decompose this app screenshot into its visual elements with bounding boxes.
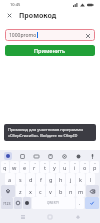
button[interactable]: j <box>66 173 75 185</box>
staticText: j <box>70 176 72 183</box>
staticText: 1 <box>4 161 6 164</box>
staticText: Промокод для участников программы <box>8 127 84 132</box>
button[interactable]: Enter <box>85 197 99 209</box>
button[interactable]: Clear <box>84 32 91 39</box>
staticText: m <box>78 188 84 195</box>
staticText: t <box>44 164 46 171</box>
button[interactable]: 7 <box>60 161 69 173</box>
staticText: e <box>23 164 27 171</box>
button[interactable]: g <box>46 173 55 185</box>
button[interactable]: 9 <box>80 161 89 173</box>
staticText: QWERTY <box>47 201 60 205</box>
button[interactable]: Backspace <box>86 185 99 197</box>
staticText: Применить <box>34 47 66 54</box>
button[interactable]: Voice input <box>88 152 96 160</box>
button[interactable]: v <box>46 185 55 197</box>
staticText: l <box>90 176 92 183</box>
staticText: d <box>29 176 33 183</box>
button[interactable]: 0 <box>90 161 99 173</box>
button[interactable]: Shift <box>1 185 15 197</box>
staticText: g <box>49 176 53 183</box>
staticText: h <box>59 176 63 183</box>
staticText: 5 <box>44 161 46 164</box>
button[interactable]: b <box>56 185 65 197</box>
button[interactable]: s <box>16 173 25 185</box>
button[interactable]: 1000promo <box>5 29 95 41</box>
button[interactable]: h <box>56 173 65 185</box>
staticText: a <box>8 176 12 183</box>
staticText: q <box>3 164 7 171</box>
staticText: y <box>53 164 56 171</box>
button[interactable]: 4 <box>30 161 39 173</box>
staticText: 6 <box>54 161 56 164</box>
staticText: 3 <box>24 161 26 164</box>
staticText: 7 <box>64 161 66 164</box>
staticText: s <box>19 176 22 183</box>
button[interactable]: z <box>16 185 25 197</box>
button[interactable]: Back <box>73 212 83 222</box>
button[interactable]: Home <box>45 212 55 222</box>
button[interactable]: 8 <box>70 161 79 173</box>
staticText: k <box>79 176 82 183</box>
button[interactable]: d <box>26 173 35 185</box>
staticText: o <box>83 164 87 171</box>
button[interactable]: 2 <box>10 161 19 173</box>
staticText: 10:45 <box>10 2 21 7</box>
button[interactable]: 6 <box>50 161 59 173</box>
button[interactable]: Emoji <box>14 197 22 209</box>
staticText: z <box>19 188 22 195</box>
button[interactable]: f <box>36 173 45 185</box>
button[interactable]: Применить <box>5 45 95 56</box>
button[interactable]: 1 <box>1 161 9 173</box>
staticText: b <box>59 188 63 195</box>
button[interactable]: n <box>66 185 75 197</box>
button[interactable]: Google <box>4 152 12 160</box>
button[interactable]: Change language <box>23 197 31 209</box>
staticText: «СберСпасибо». Войдите по СберID <box>8 133 78 138</box>
staticText: v <box>49 188 52 195</box>
button[interactable]: Close <box>4 10 15 21</box>
button[interactable]: Clipboard <box>18 152 26 160</box>
button[interactable]: GIF <box>32 152 40 160</box>
staticText: r <box>33 164 36 171</box>
button[interactable]: . <box>76 197 84 209</box>
button[interactable]: x <box>26 185 35 197</box>
button[interactable]: Recents <box>18 212 28 222</box>
button[interactable]: 5 <box>40 161 49 173</box>
staticText: 4 <box>34 161 36 164</box>
staticText: w <box>12 164 17 171</box>
button[interactable]: m <box>76 185 85 197</box>
staticText: x <box>29 188 32 195</box>
staticText: i <box>74 164 76 171</box>
button[interactable]: 3 <box>20 161 29 173</box>
button[interactable]: k <box>76 173 85 185</box>
staticText: n <box>69 188 73 195</box>
staticText: ?123 <box>3 201 11 206</box>
button[interactable]: Space <box>32 197 75 209</box>
button[interactable]: Sticker <box>46 152 54 160</box>
staticText: p <box>93 164 97 171</box>
staticText: . <box>79 200 81 207</box>
staticText: Промокод <box>19 11 57 21</box>
staticText: 0 <box>94 161 96 164</box>
button[interactable]: a <box>5 173 15 185</box>
button[interactable]: Theme <box>74 152 82 160</box>
button[interactable]: c <box>36 185 45 197</box>
staticText: c <box>39 188 42 195</box>
staticText: 8 <box>74 161 76 164</box>
button[interactable]: l <box>86 173 95 185</box>
staticText: u <box>63 164 67 171</box>
staticText: 1000promo <box>9 32 37 39</box>
button[interactable]: ?123 <box>1 197 13 209</box>
staticText: 9 <box>84 161 86 164</box>
button[interactable]: Settings <box>60 152 68 160</box>
staticText: f <box>40 176 42 183</box>
staticText: 2 <box>14 161 16 164</box>
